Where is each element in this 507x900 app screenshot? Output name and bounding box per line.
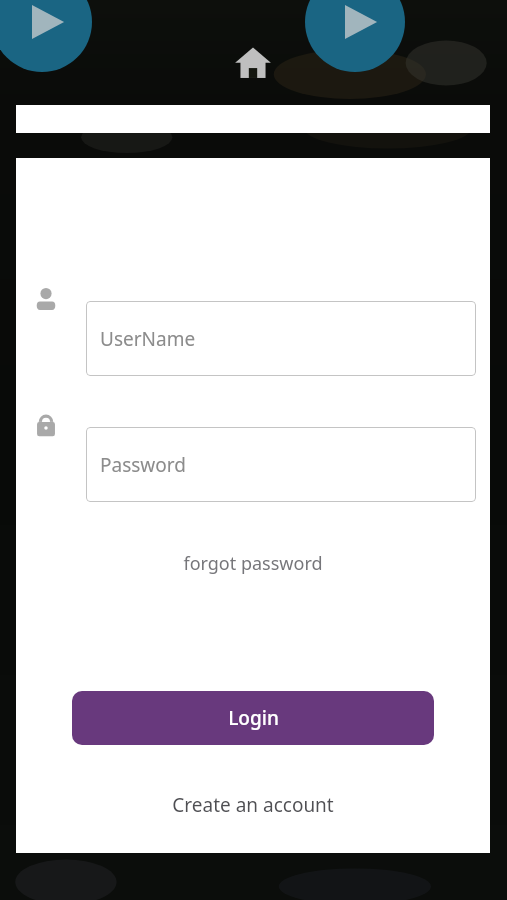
button[interactable]: Create an account — [133, 788, 373, 822]
button[interactable]: forgot password — [153, 547, 353, 579]
staticText: Create an account — [172, 792, 334, 818]
staticText: forgot password — [183, 551, 323, 576]
button[interactable]: Home — [234, 43, 272, 81]
button[interactable]: Login — [72, 691, 434, 745]
other: User name — [30, 283, 62, 315]
button[interactable]: Play video — [0, 0, 92, 72]
button[interactable]: Play video — [305, 0, 405, 72]
staticText: UserName — [100, 326, 196, 352]
staticText: Password — [100, 452, 186, 478]
button[interactable]: Password — [86, 427, 476, 502]
button[interactable]: UserName — [86, 301, 476, 376]
other: Password — [30, 408, 62, 440]
staticText: Login — [228, 705, 279, 731]
